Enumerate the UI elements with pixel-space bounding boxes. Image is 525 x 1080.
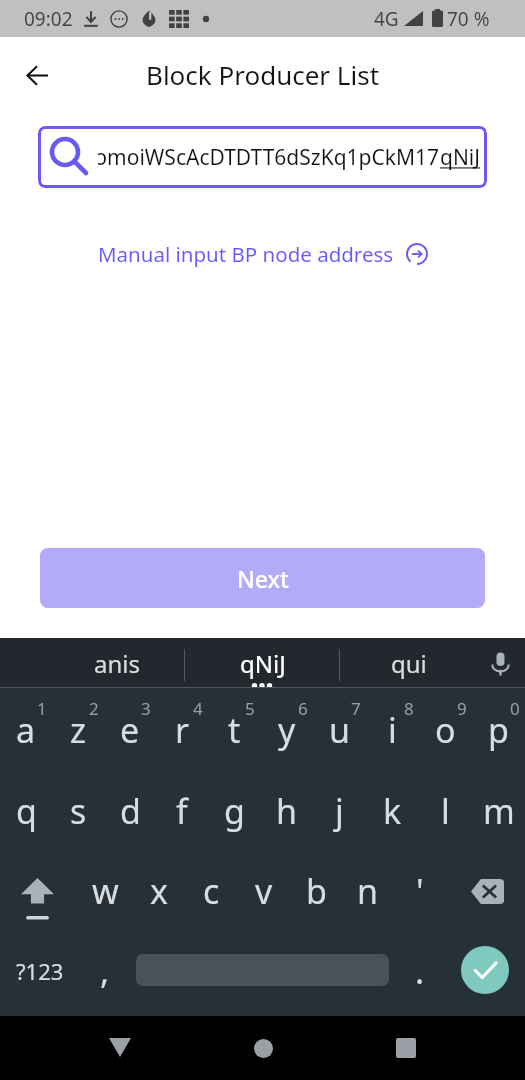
staticText: qNiJ	[440, 143, 481, 172]
button[interactable]: c	[185, 851, 238, 931]
button[interactable]: q	[0, 771, 52, 851]
button[interactable]: qNiJ	[186, 638, 339, 688]
button[interactable]: m	[472, 771, 525, 851]
button[interactable]: n	[342, 851, 394, 931]
staticText: d	[120, 788, 141, 834]
staticText: j	[335, 788, 344, 834]
staticText: qNiJ	[240, 647, 286, 680]
staticText: w	[92, 868, 119, 914]
button[interactable]: b	[290, 851, 342, 931]
button[interactable]: Back	[14, 52, 60, 98]
button[interactable]: Recents	[378, 1020, 434, 1076]
staticText: ɔmoiWScAcDTDTT6dSzKq1pCkM17	[97, 143, 440, 172]
button[interactable]: w	[79, 851, 132, 931]
staticText: c	[203, 868, 220, 914]
staticText: 4G	[374, 6, 399, 32]
button[interactable]: Enter	[461, 946, 509, 994]
staticText: 3	[141, 697, 151, 720]
staticText: n	[357, 868, 379, 914]
button[interactable]: i	[366, 688, 419, 771]
button[interactable]: l	[419, 771, 472, 851]
staticText: 6	[298, 697, 308, 720]
button[interactable]: v	[238, 851, 290, 931]
button[interactable]: ?123	[0, 928, 80, 1013]
button[interactable]: d	[104, 771, 156, 851]
staticText: 8	[404, 697, 414, 720]
staticText: o	[435, 707, 456, 753]
staticText: ,	[100, 948, 110, 994]
staticText: 4	[193, 697, 203, 720]
button[interactable]: Shift	[0, 851, 79, 931]
button[interactable]: qui	[341, 638, 476, 688]
staticText: m	[483, 788, 515, 834]
staticText: a	[16, 707, 36, 753]
button[interactable]: '	[394, 851, 446, 931]
staticText: r	[175, 707, 190, 753]
staticText: s	[70, 788, 87, 834]
button[interactable]: t	[208, 688, 260, 771]
staticText: t	[228, 707, 241, 753]
staticText: 2	[89, 697, 99, 720]
staticText: '	[416, 868, 424, 914]
staticText: 09:02	[24, 6, 73, 32]
staticText: ?123	[16, 956, 64, 986]
staticText: 1	[37, 697, 47, 720]
button[interactable]: g	[208, 771, 260, 851]
button[interactable]: p	[472, 688, 525, 771]
staticText: l	[441, 788, 450, 834]
staticText: p	[488, 707, 509, 753]
button[interactable]: k	[366, 771, 419, 851]
staticText: z	[70, 707, 86, 753]
button[interactable]: x	[132, 851, 185, 931]
button[interactable]: Next	[40, 548, 485, 608]
staticText: u	[329, 707, 351, 753]
button[interactable]: Back	[92, 1019, 148, 1075]
button[interactable]: Home	[235, 1020, 291, 1076]
staticText: Next	[237, 563, 289, 594]
staticText: 70 %	[447, 6, 490, 32]
staticText: b	[306, 868, 327, 914]
button[interactable]: j	[313, 771, 366, 851]
staticText: e	[120, 707, 140, 753]
staticText: i	[388, 707, 397, 753]
staticText: k	[383, 788, 402, 834]
staticText: q	[16, 788, 37, 834]
staticText: f	[176, 788, 188, 834]
button[interactable]: s	[52, 771, 104, 851]
staticText: h	[276, 788, 298, 834]
staticText: x	[150, 868, 168, 914]
staticText: .	[415, 948, 425, 994]
staticText: qui	[391, 647, 427, 680]
button[interactable]: Manual input BP node address	[0, 237, 525, 271]
button[interactable]: y	[260, 688, 313, 771]
button[interactable]: u	[313, 688, 366, 771]
staticText: Manual input BP node address	[98, 240, 394, 268]
button[interactable]: ,	[80, 928, 130, 1013]
staticText: 7	[351, 697, 361, 720]
button[interactable]: Voice input	[481, 644, 519, 682]
button[interactable]: anis	[29, 638, 204, 688]
staticText: Block Producer List	[146, 57, 380, 92]
staticText: y	[278, 707, 296, 753]
staticText: 0	[510, 697, 520, 720]
button[interactable]: .	[395, 928, 445, 1013]
button[interactable]: z	[52, 688, 104, 771]
button[interactable]: f	[156, 771, 208, 851]
staticText: 5	[245, 697, 255, 720]
staticText: g	[224, 788, 245, 834]
button[interactable]: e	[104, 688, 156, 771]
staticText: 9	[457, 697, 467, 720]
button[interactable]: Backspace	[446, 851, 525, 931]
button[interactable]: ɔmoiWScAcDTDTT6dSzKq1pCkM17	[38, 126, 487, 188]
button[interactable]: r	[156, 688, 208, 771]
staticText: anis	[94, 647, 140, 680]
button[interactable]: h	[260, 771, 313, 851]
button[interactable]: a	[0, 688, 52, 771]
staticText: v	[255, 868, 273, 914]
button[interactable]: o	[419, 688, 472, 771]
